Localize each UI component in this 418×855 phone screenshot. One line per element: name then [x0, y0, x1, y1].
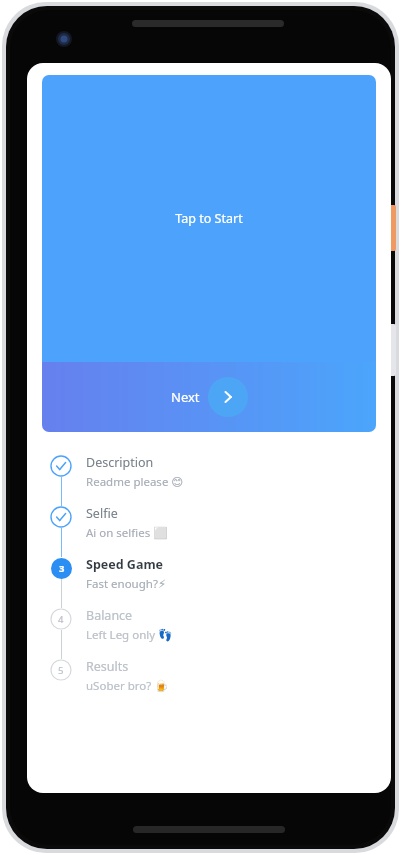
other: Power: [389, 205, 396, 251]
staticText: Selfie: [86, 505, 118, 522]
button[interactable]: Selfie: [42, 506, 391, 557]
button[interactable]: 5: [42, 659, 391, 695]
staticText: Fast enough?⚡: [86, 576, 166, 592]
staticText: 4: [58, 613, 64, 626]
button[interactable]: 3: [42, 557, 391, 608]
staticText: Readme please 😊: [86, 474, 184, 490]
staticText: Description: [86, 454, 154, 471]
button[interactable]: Tap to Start: [42, 75, 376, 362]
button[interactable]: Next: [42, 362, 376, 432]
staticText: Tap to Start: [175, 210, 243, 227]
staticText: Balance: [86, 607, 133, 624]
button[interactable]: 4: [42, 608, 391, 659]
staticText: 5: [58, 664, 64, 677]
other: Next: [208, 377, 248, 417]
staticText: 3: [59, 562, 65, 575]
staticText: uSober bro? 🍺: [86, 678, 169, 694]
staticText: Ai on selfies ⬜: [86, 525, 168, 541]
other: Volume: [389, 324, 396, 376]
staticText: Left Leg only 👣: [86, 627, 173, 643]
button[interactable]: Description: [42, 455, 391, 506]
staticText: Next: [171, 388, 200, 406]
staticText: Results: [86, 658, 129, 675]
staticText: Speed Game: [86, 556, 164, 573]
